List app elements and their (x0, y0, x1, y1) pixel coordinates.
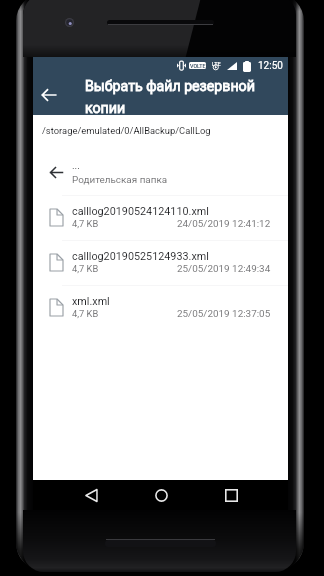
button[interactable]: Back (78, 482, 104, 508)
staticText: 24/05/2019 12:41:12 (177, 218, 271, 230)
button[interactable]: Home (148, 482, 174, 508)
button[interactable]: Recent apps (218, 482, 244, 508)
button[interactable]: calllog20190525124933.xml (33, 241, 288, 285)
staticText: calllog20190524124110.xml (72, 205, 209, 218)
button[interactable]: calllog20190524124110.xml (33, 196, 288, 240)
staticText: 4,7 KB (72, 308, 99, 319)
staticText: 25/05/2019 12:37:05 (177, 308, 271, 320)
staticText: VOLTE (190, 63, 206, 69)
button[interactable]: ... (33, 147, 288, 195)
staticText: LTE (212, 61, 221, 68)
staticText: xml.xml (72, 295, 110, 308)
staticText: 4,7 KB (72, 218, 99, 229)
staticText: Родительская папка (72, 174, 168, 186)
button[interactable]: xml.xml (33, 286, 288, 330)
staticText: ... (72, 160, 80, 172)
staticText: 4,7 KB (72, 263, 99, 274)
staticText: 12:50 (258, 60, 283, 72)
staticText: Выбрать файл резервной копии (85, 78, 265, 116)
staticText: 25/05/2019 12:49:34 (177, 263, 271, 275)
staticText: calllog20190525124933.xml (72, 250, 209, 263)
button[interactable]: Navigate up (36, 82, 62, 108)
staticText: /storage/emulated/0/AllBackup/CallLog (42, 125, 211, 136)
